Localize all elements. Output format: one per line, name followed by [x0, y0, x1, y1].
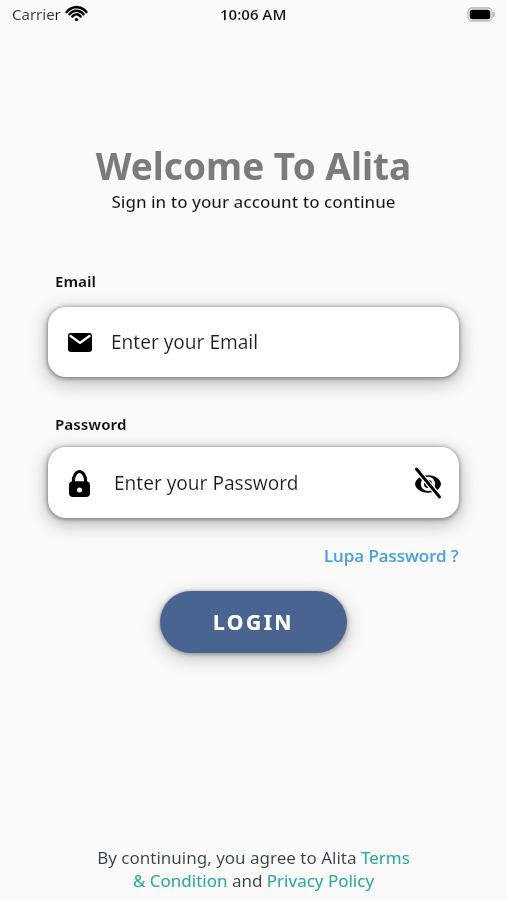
staticText: Enter your Password: [114, 470, 299, 496]
button[interactable]: [415, 468, 441, 498]
staticText: Enter your Email: [111, 329, 259, 355]
button[interactable]: By continuing, you agree to Alita Terms …: [0, 846, 507, 892]
staticText: Password: [55, 414, 127, 434]
button[interactable]: Lupa Password ?: [324, 544, 459, 567]
staticText: Sign in to your account to continue: [0, 190, 507, 213]
staticText: Welcome To Alita: [0, 140, 507, 190]
staticText: 10:06 AM: [220, 4, 287, 24]
staticText: Carrier: [12, 4, 61, 24]
staticText: LOGIN: [213, 608, 294, 637]
button[interactable]: LOGIN: [160, 591, 347, 653]
button[interactable]: Enter your Email: [48, 307, 459, 377]
staticText: Email: [55, 271, 96, 291]
button[interactable]: Enter your Password: [48, 447, 459, 518]
